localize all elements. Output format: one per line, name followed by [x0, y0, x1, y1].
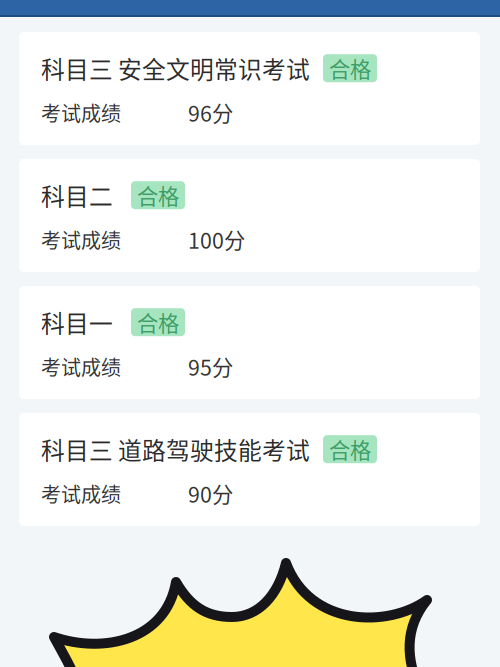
- staticText: 科目二: [41, 178, 113, 212]
- staticText: 合格: [329, 53, 371, 84]
- button[interactable]: 科目三 安全文明常识考试: [19, 32, 480, 145]
- staticText: 考试成绩: [41, 98, 121, 127]
- staticText: 合格: [137, 180, 179, 211]
- staticText: 考试成绩: [41, 479, 121, 508]
- staticText: 合格: [329, 434, 371, 465]
- staticText: 科目三 道路驾驶技能考试: [41, 432, 310, 466]
- button[interactable]: 科目二: [19, 159, 480, 272]
- button[interactable]: 科目三 道路驾驶技能考试: [19, 413, 480, 526]
- staticText: 90分: [188, 478, 233, 509]
- button[interactable]: 科目一: [19, 286, 480, 399]
- staticText: 科目三 安全文明常识考试: [41, 51, 310, 85]
- staticText: 合格: [137, 307, 179, 338]
- staticText: 考试成绩: [41, 225, 121, 254]
- staticText: 考试成绩: [41, 352, 121, 381]
- staticText: 95分: [188, 351, 233, 382]
- staticText: 96分: [188, 97, 233, 128]
- staticText: 100分: [188, 224, 245, 255]
- staticText: 科目一: [41, 305, 113, 339]
